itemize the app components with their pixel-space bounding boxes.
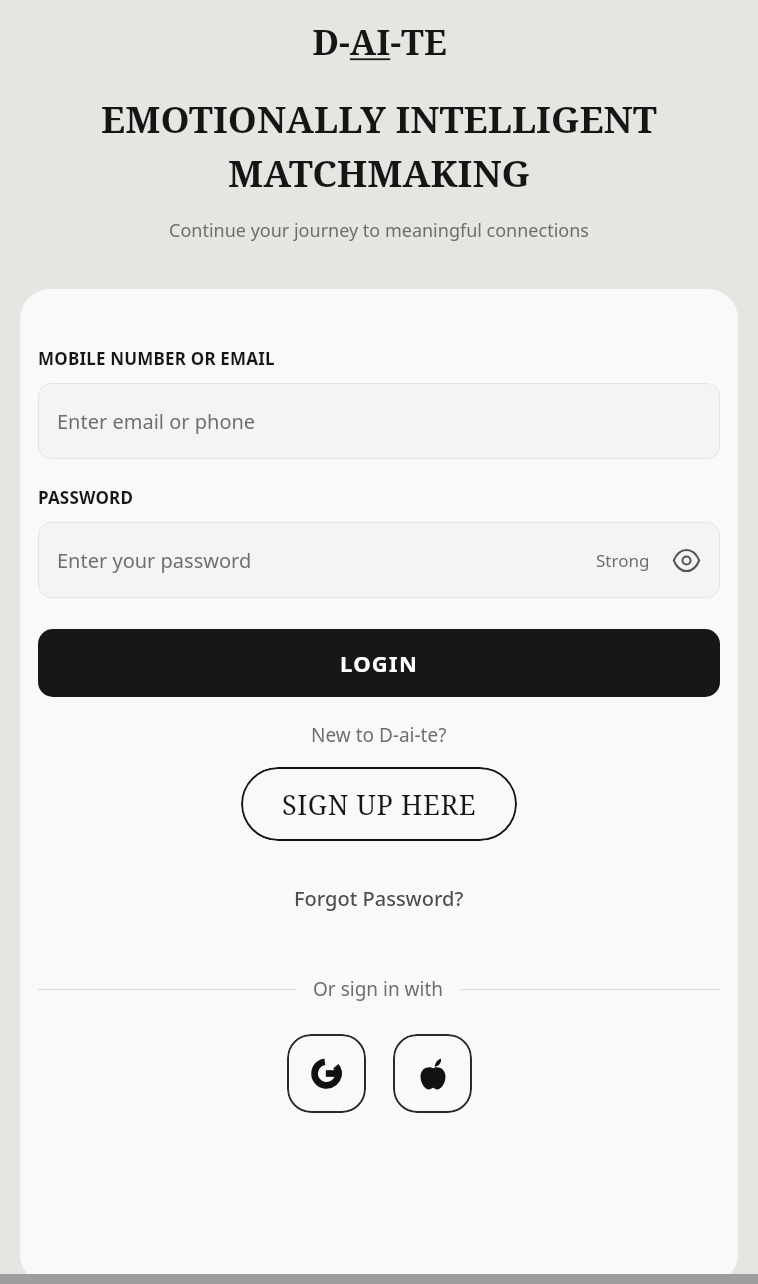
- button[interactable]: Sign in with Google: [287, 1034, 366, 1113]
- button[interactable]: LOGIN: [38, 629, 720, 697]
- staticText: New to D-ai-te?: [311, 722, 447, 748]
- staticText: Forgot Password?: [294, 885, 464, 912]
- staticText: Continue your journey to meaningful conn…: [0, 218, 758, 243]
- staticText: PASSWORD: [38, 486, 134, 509]
- button[interactable]: Forgot Password?: [286, 881, 472, 916]
- staticText: Strong: [596, 549, 650, 572]
- staticText: D-AI-TE: [312, 18, 447, 66]
- staticText: Enter email or phone: [57, 408, 256, 435]
- button[interactable]: Show password: [670, 544, 702, 576]
- staticText: SIGN UP HERE: [282, 786, 477, 823]
- staticText: MOBILE NUMBER OR EMAIL: [38, 347, 275, 370]
- staticText: EMOTIONALLY INTELLIGENT MATCHMAKING: [16, 93, 742, 198]
- button[interactable]: Enter your password: [38, 522, 720, 598]
- button[interactable]: Sign in with Apple: [393, 1034, 472, 1113]
- staticText: LOGIN: [340, 648, 419, 678]
- button[interactable]: SIGN UP HERE: [241, 767, 517, 841]
- button[interactable]: Enter email or phone: [38, 383, 720, 459]
- staticText: Or sign in with: [313, 976, 444, 1002]
- staticText: Enter your password: [57, 547, 252, 574]
